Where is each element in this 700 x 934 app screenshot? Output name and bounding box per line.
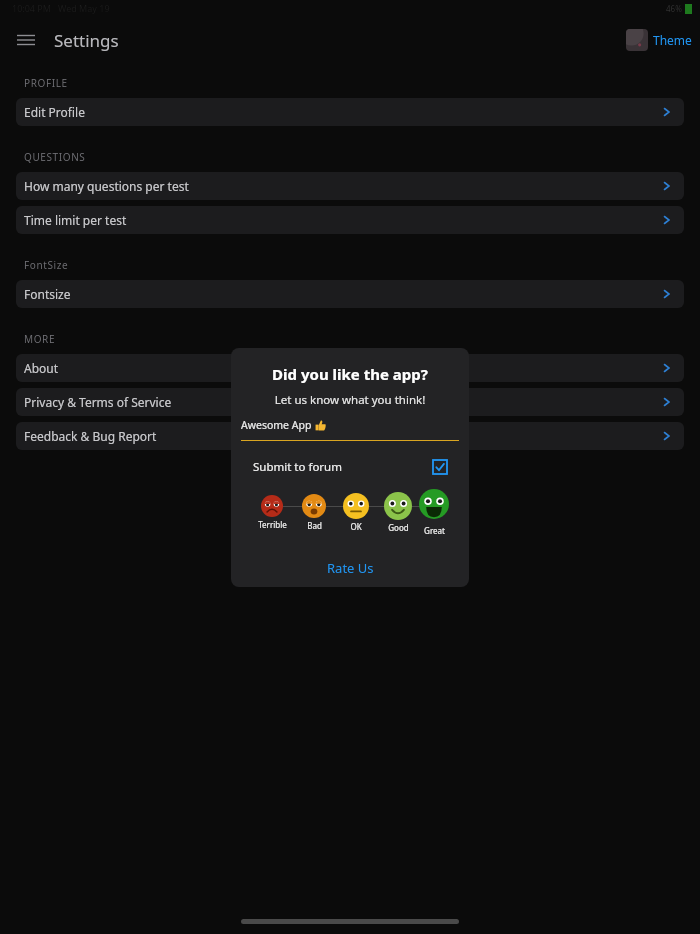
staticText: Good — [388, 522, 409, 533]
button[interactable]: Time limit per test — [16, 206, 684, 234]
button[interactable]: Edit Profile — [16, 98, 684, 126]
staticText: Feedback & Bug Report — [24, 428, 157, 444]
staticText: Rate Us — [327, 559, 374, 577]
button[interactable]: Good — [377, 489, 419, 533]
button[interactable]: Bad — [293, 489, 335, 531]
button[interactable]: Great — [419, 489, 449, 536]
staticText: Theme — [653, 32, 692, 48]
staticText: Awesome App — [241, 418, 315, 432]
button[interactable]: Feedback & Bug Report — [16, 422, 684, 450]
staticText: Bad — [307, 520, 322, 531]
staticText: Let us know what you think! — [231, 392, 469, 408]
button[interactable]: OK — [335, 489, 377, 532]
button[interactable]: Rate Us — [231, 553, 469, 583]
other: Submit to forum checkbox — [433, 460, 447, 474]
button[interactable]: Menu — [8, 22, 44, 58]
button[interactable]: Theme — [626, 29, 692, 51]
staticText: Privacy & Terms of Service — [24, 394, 172, 410]
staticText: Did you like the app? — [231, 364, 469, 384]
staticText: FontSize — [24, 258, 69, 272]
staticText: Settings — [54, 29, 119, 52]
button[interactable]: Submit to forum — [253, 459, 447, 475]
staticText: Edit Profile — [24, 104, 85, 120]
button[interactable]: About — [16, 354, 684, 382]
button[interactable]: How many questions per test — [16, 172, 684, 200]
button[interactable]: Privacy & Terms of Service — [16, 388, 684, 416]
staticText: About — [24, 360, 59, 376]
staticText: Time limit per test — [24, 212, 127, 228]
staticText: QUESTIONS — [24, 150, 86, 164]
staticText: Fontsize — [24, 286, 71, 302]
staticText: 46% — [666, 3, 682, 14]
staticText: 10:04 PM Wed May 19 — [12, 2, 110, 14]
staticText: Great — [424, 525, 445, 536]
button[interactable]: Fontsize — [16, 280, 684, 308]
staticText: Terrible — [258, 519, 287, 530]
staticText: OK — [350, 521, 362, 532]
staticText: MORE — [24, 332, 56, 346]
staticText: How many questions per test — [24, 178, 189, 194]
staticText: Submit to forum — [253, 459, 342, 475]
button[interactable]: Terrible — [251, 489, 293, 530]
staticText: PROFILE — [24, 76, 68, 90]
